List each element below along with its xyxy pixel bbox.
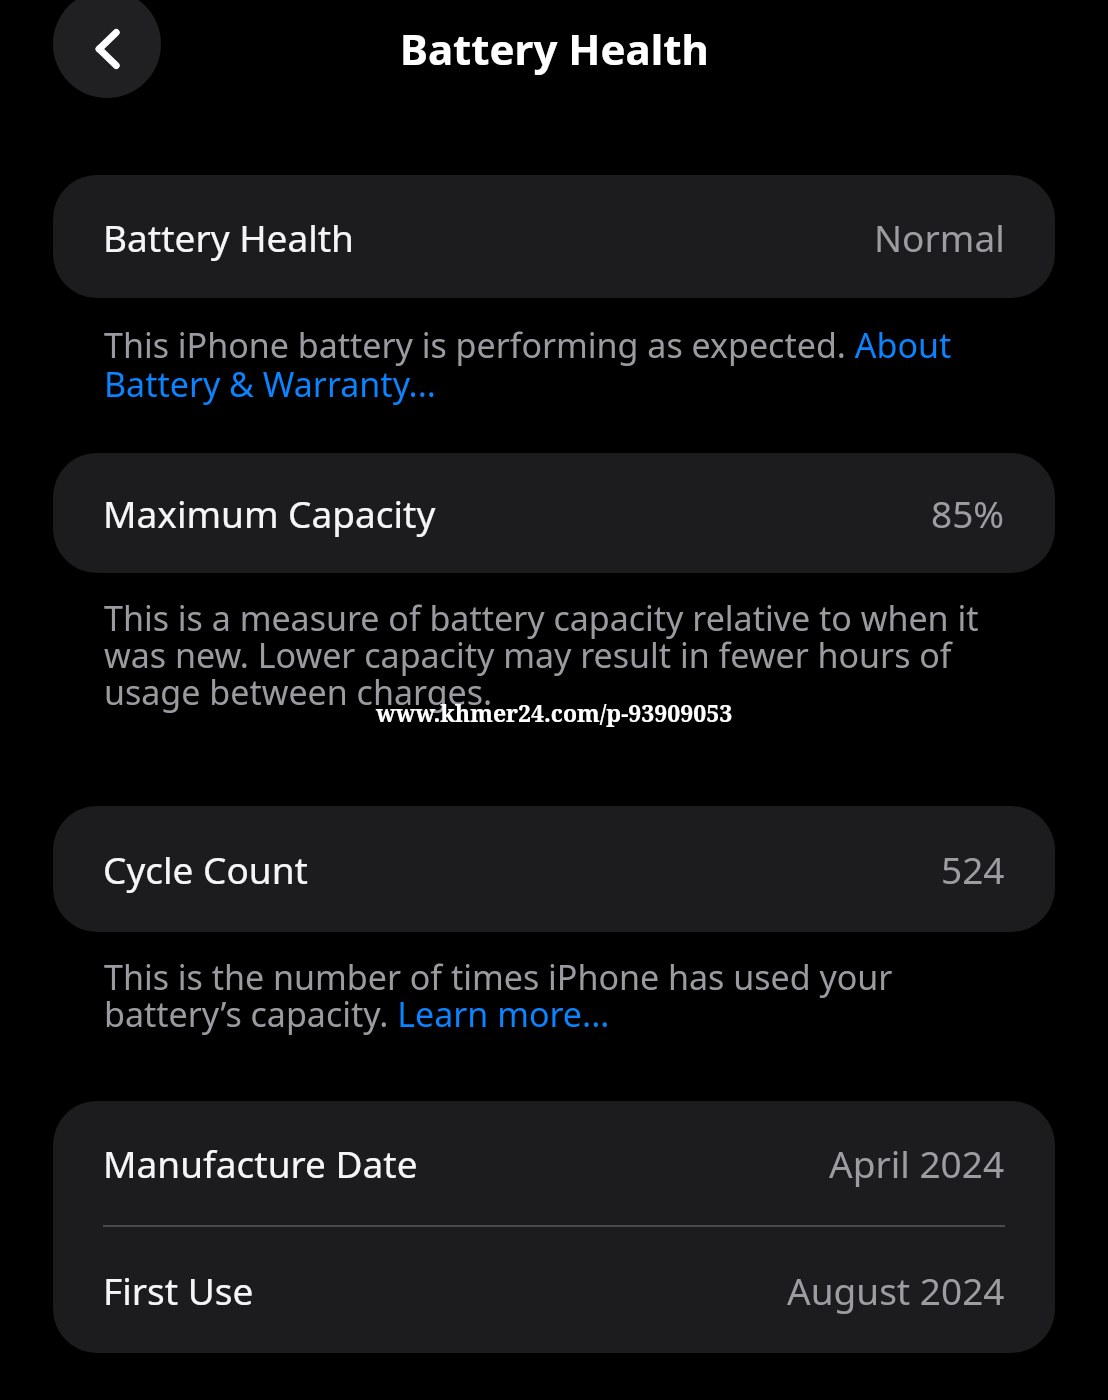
staticText: This is a measure of battery capacity re… bbox=[104, 595, 1028, 715]
button[interactable]: Manufacture Date bbox=[53, 1101, 1055, 1225]
staticText: Maximum Capacity bbox=[103, 488, 436, 538]
staticText: August 2024 bbox=[787, 1265, 1005, 1315]
staticText: 85% bbox=[931, 488, 1005, 538]
staticText: 524 bbox=[941, 844, 1005, 894]
staticText: Manufacture Date bbox=[103, 1138, 418, 1188]
button[interactable]: Battery Health bbox=[53, 175, 1055, 298]
staticText: Battery Health bbox=[400, 20, 709, 77]
staticText: This is the number of times iPhone has u… bbox=[104, 954, 1028, 1037]
button[interactable]: Back bbox=[53, 0, 161, 98]
staticText: This iPhone battery is performing as exp… bbox=[104, 322, 1023, 407]
staticText: Normal bbox=[874, 212, 1005, 262]
button[interactable]: Cycle Count bbox=[53, 806, 1055, 932]
staticText: Battery Health bbox=[103, 212, 354, 262]
button[interactable]: Maximum Capacity bbox=[53, 453, 1055, 573]
staticText: First Use bbox=[103, 1265, 254, 1315]
button[interactable]: First Use bbox=[53, 1227, 1055, 1353]
staticText: April 2024 bbox=[829, 1138, 1005, 1188]
staticText: www.khmer24.com/p-93909053 bbox=[376, 697, 733, 728]
staticText: Cycle Count bbox=[103, 844, 308, 894]
